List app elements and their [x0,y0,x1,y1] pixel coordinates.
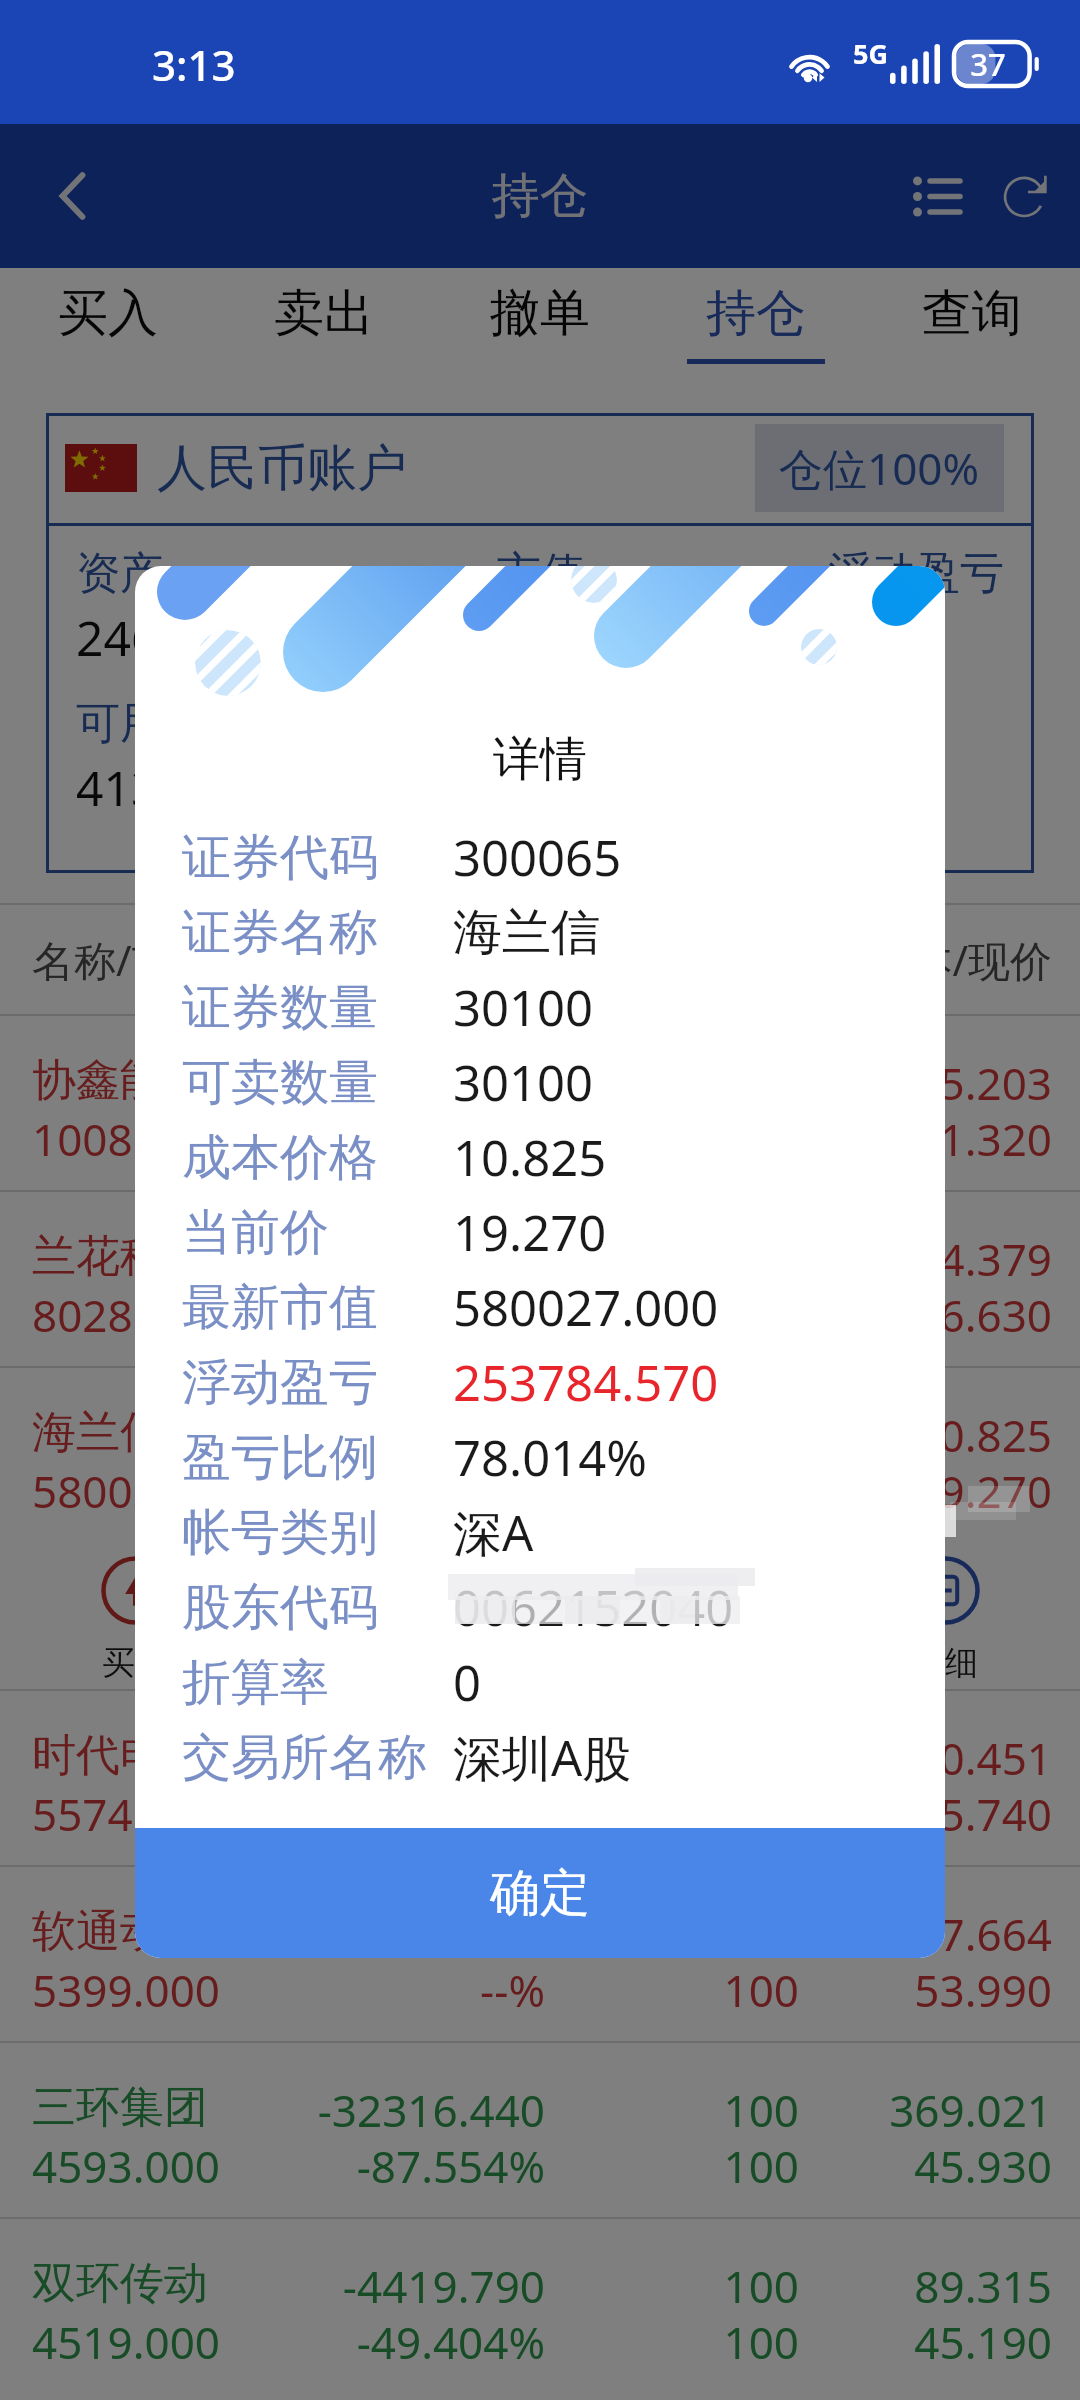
button[interactable]: 协鑫能科 [0,1016,1080,1190]
staticText: 可用 [76,696,164,751]
staticText: 100 [545,1285,799,1337]
staticText: 可卖数量 [182,1052,378,1114]
staticText: 2468 [76,605,186,670]
staticText: 100 [545,1229,799,1281]
staticText: 持仓 [706,282,806,345]
staticText: 盈亏比例 [182,1427,378,1489]
staticText: 100 [545,1053,799,1105]
staticText: 6.630 [799,1285,1052,1337]
staticText: 股东代码 [182,1577,378,1639]
staticText: 名称/市值 [32,931,216,988]
staticText: 协鑫能科 [32,1053,208,1105]
button[interactable]: 海兰信 [0,1368,1080,1689]
staticText: 买入 [58,282,158,345]
staticText: 12533.220 [310,1053,545,1105]
staticText: 253784.570 [310,1405,545,1457]
staticText: 三环集团 [32,2080,208,2132]
staticText: 100 [545,2312,799,2364]
staticText: 0 [453,1649,482,1716]
button[interactable]: 买入 [0,268,216,381]
staticText: 成本/现价 [799,931,1052,988]
staticText: 25.238% [310,1285,545,1337]
button[interactable]: 卖出 [270,1556,540,1684]
button[interactable]: 三环集团 [0,2043,1080,2217]
button[interactable]: 时代电气 [0,1691,1080,1865]
staticText: 当前价 [182,1202,329,1264]
staticText: 45.930 [799,2136,1052,2188]
button[interactable]: 买入 [0,1556,270,1684]
staticText: 78.014% [310,1461,545,1513]
button[interactable]: 分时 [540,1556,810,1684]
button[interactable]: 持仓 [648,268,864,381]
staticText: 明细 [912,1642,978,1684]
staticText: 仓位100% [779,438,980,498]
staticText: 证券代码 [182,827,378,889]
staticText: 证券名称 [182,902,378,964]
staticText: -32316.440 [310,2080,545,2132]
staticText: 盈亏/比例 [310,931,545,988]
staticText: 资产 [76,546,164,601]
staticText: 卖出 [274,282,374,345]
staticText: 14.205% [310,1109,545,1161]
staticText: 369.021 [799,2080,1052,2132]
staticText: 3:13 [152,36,236,93]
staticText: 软通动力 [32,1904,208,1956]
staticText: 0.451 [799,1728,1052,1780]
button[interactable]: 明细 [810,1556,1080,1684]
staticText: 100 [545,1109,799,1161]
staticText: 成本价格 [182,1127,378,1189]
staticText: 详情 [493,730,587,789]
button[interactable]: 软通动力 [0,1867,1080,2041]
staticText: 海兰信 [453,902,600,964]
staticText: --% [310,1960,545,2012]
staticText: 深A [453,1499,534,1566]
staticText: 100 [545,2256,799,2308]
staticText: 89.315 [799,2256,1052,2308]
button[interactable]: 确定 [135,1828,945,1958]
staticText: 16201.440 [310,1229,545,1281]
staticText: 帐号类别 [182,1502,378,1564]
button[interactable]: 查询 [864,268,1080,381]
staticText: 78.014% [453,1424,647,1491]
staticText: 5.740 [799,1784,1052,1836]
staticText: 持仓/可用 [545,931,799,988]
button[interactable]: 双环传动 [0,2219,1080,2393]
staticText: 100 [545,1461,799,1513]
staticText: 撤单 [490,282,590,345]
staticText: 交易所名称 [182,1727,427,1789]
button[interactable]: 仓位100% [779,438,980,498]
staticText: 时代电气 [32,1728,208,1780]
staticText: 300065 [453,824,622,891]
button[interactable]: List view [906,152,966,240]
staticText: 100 [545,2080,799,2132]
button[interactable]: 卖出 [216,268,432,381]
staticText: 100 [545,1728,799,1780]
staticText: 100 [545,1784,799,1836]
staticText: 5.203 [799,1053,1052,1105]
staticText: 100 [545,1960,799,2012]
staticText: 80289.000 [32,1285,246,1337]
staticText: 浮动盈亏 [182,1352,378,1414]
staticText: 53.990 [799,1960,1052,2012]
staticText: 100 [545,2136,799,2188]
staticText: 5399.000 [32,1960,220,2012]
button[interactable]: 兰花科创 [0,1192,1080,1366]
staticText: 确定 [490,1862,590,1925]
staticText: 海兰信 [32,1405,164,1457]
button[interactable]: Refresh [996,152,1056,240]
button[interactable]: 撤单 [432,268,648,381]
staticText: 买入 [102,1642,168,1684]
staticText: 19.270 [453,1199,607,1266]
button[interactable]: Back [18,141,128,251]
staticText: 9.270 [799,1461,1052,1513]
staticText: 浮动盈亏 [828,546,1004,601]
staticText: 查询 [922,282,1022,345]
staticText: 10.825 [453,1124,607,1191]
staticText: 45.190 [799,2312,1052,2364]
staticText: 最新市值 [182,1277,378,1339]
staticText: 深圳A股 [453,1724,632,1791]
staticText: 人民币账户 [157,437,407,500]
staticText: -87.554% [310,2136,545,2188]
